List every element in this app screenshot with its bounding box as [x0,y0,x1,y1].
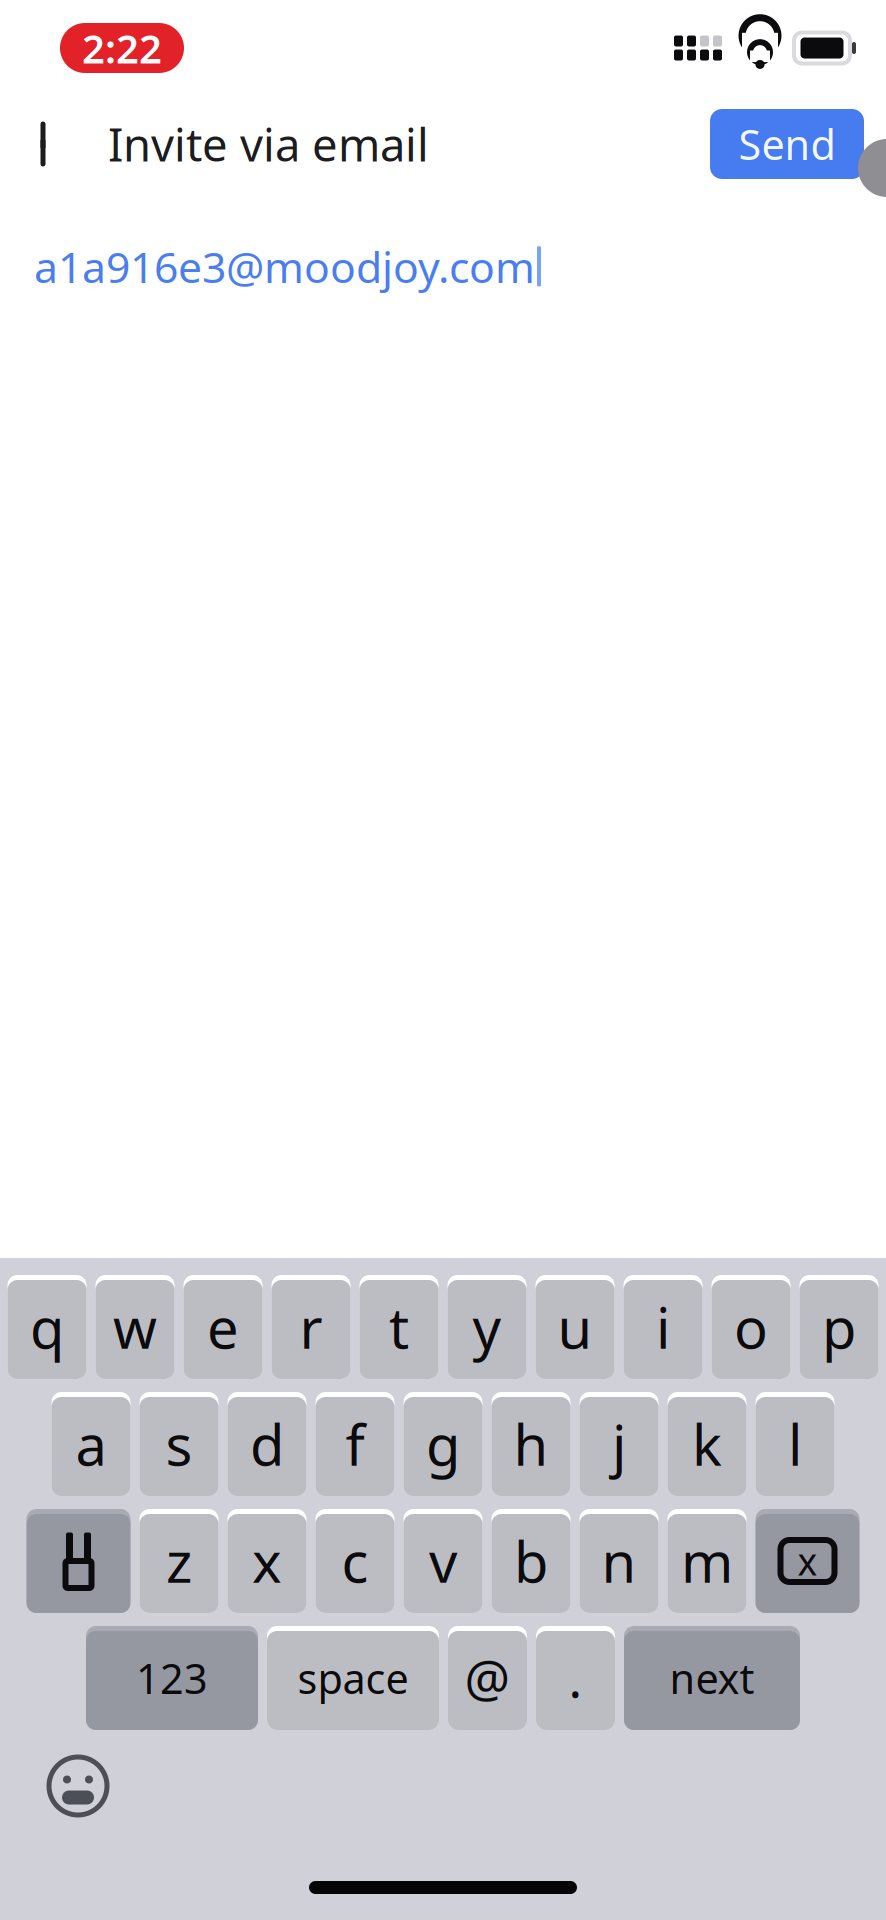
button[interactable]: . [536,1626,615,1730]
staticText: Send [738,117,835,171]
staticText: i [656,1290,670,1364]
staticText: 123 [136,1651,208,1705]
button[interactable]: next [624,1626,800,1730]
button[interactable]: t [359,1275,438,1379]
button[interactable]: a [51,1392,130,1496]
button[interactable]: 123 [86,1626,258,1730]
staticText: j [612,1407,626,1481]
staticText: e [207,1290,239,1364]
staticText: space [297,1651,408,1705]
staticText: o [734,1290,768,1364]
button[interactable]: k [667,1392,746,1496]
button[interactable]: x [227,1509,306,1613]
staticText: z [166,1524,192,1598]
staticText: n [601,1524,636,1598]
staticText: Invite via email [108,114,429,174]
staticText: k [692,1407,722,1481]
button[interactable]: p [799,1275,878,1379]
button[interactable]: h [491,1392,570,1496]
button[interactable]: b [491,1509,570,1613]
staticText: q [30,1290,64,1364]
button[interactable]: g [403,1392,482,1496]
staticText: l [788,1407,802,1481]
staticText: s [165,1407,192,1481]
button[interactable]: w [95,1275,174,1379]
button[interactable]: z [139,1509,218,1613]
button[interactable]: Emoji keyboard [28,1742,128,1830]
staticText: f [345,1407,364,1481]
button[interactable]: q [7,1275,86,1379]
staticText: m [681,1524,733,1598]
button[interactable]: m [667,1509,746,1613]
button[interactable]: d [227,1392,306,1496]
staticText: v [429,1524,457,1598]
staticText: h [513,1407,548,1481]
staticText: c [341,1524,368,1598]
button[interactable]: i [623,1275,702,1379]
staticText: b [514,1524,548,1598]
button[interactable]: y [447,1275,526,1379]
button[interactable]: space [267,1626,439,1730]
staticText: a1a916e3@moodjoy.com [34,238,535,295]
staticText: r [299,1290,322,1364]
staticText: g [426,1407,460,1481]
button[interactable]: @ [448,1626,527,1730]
staticText: @ [464,1644,510,1712]
staticText: p [822,1290,856,1364]
staticText: y [472,1290,501,1364]
button[interactable]: r [271,1275,350,1379]
staticText: x [252,1524,282,1598]
button[interactable]: Delete [755,1509,859,1613]
staticText: . [568,1644,582,1712]
staticText: 2:22 [82,21,162,74]
button[interactable]: o [711,1275,790,1379]
button[interactable]: v [403,1509,482,1613]
staticText: a [75,1407,106,1481]
button[interactable]: n [579,1509,658,1613]
button[interactable]: j [579,1392,658,1496]
button[interactable]: e [183,1275,262,1379]
button[interactable]: Back [0,101,86,187]
button[interactable]: f [315,1392,394,1496]
staticText: d [250,1407,284,1481]
staticText: w [113,1290,157,1364]
button[interactable]: s [139,1392,218,1496]
button[interactable]: c [315,1509,394,1613]
button[interactable]: u [535,1275,614,1379]
button[interactable]: Send [710,109,864,179]
staticText: next [669,1651,754,1705]
staticText: u [557,1290,592,1364]
staticText: t [389,1290,409,1364]
button[interactable]: Shift [26,1509,130,1613]
button[interactable]: l [755,1392,834,1496]
staticText: x [797,1536,817,1586]
